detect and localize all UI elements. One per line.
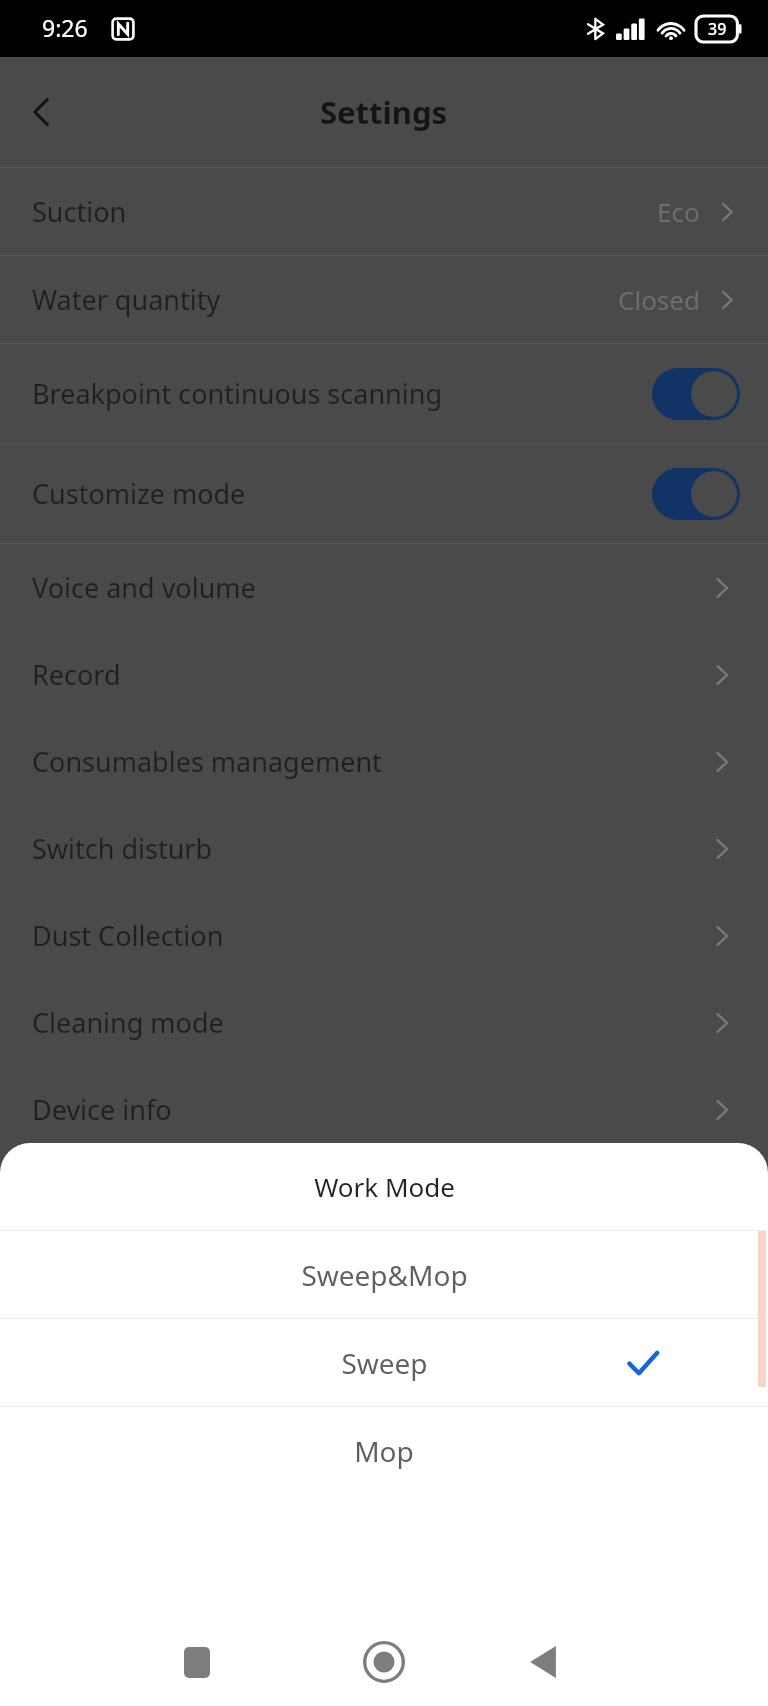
button[interactable]: Device info	[0, 1066, 768, 1153]
button[interactable]: Toggle Breakpoint continuous scanning	[652, 368, 740, 420]
staticText: Record	[32, 656, 708, 693]
staticText: Switch disturb	[32, 830, 708, 867]
button[interactable]: Switch disturb	[0, 805, 768, 892]
staticText: 39	[708, 18, 727, 40]
staticText: Device info	[32, 1091, 708, 1128]
staticText: Closed	[618, 282, 700, 317]
button[interactable]: Suction	[0, 168, 768, 255]
button[interactable]: Cleaning mode	[0, 979, 768, 1066]
staticText: Mop	[354, 1432, 414, 1470]
button[interactable]: Back	[504, 1623, 582, 1701]
staticText: Eco	[657, 194, 700, 229]
staticText: Water quantity	[32, 281, 221, 318]
staticText: Customize mode	[32, 475, 652, 512]
staticText: Suction	[32, 193, 127, 230]
button[interactable]: Sweep	[0, 1319, 768, 1406]
button[interactable]: Home	[345, 1623, 423, 1701]
button[interactable]: Record	[0, 631, 768, 718]
button[interactable]: Toggle Customize mode	[652, 468, 740, 520]
button[interactable]: Consumables management	[0, 718, 768, 805]
staticText: Breakpoint continuous scanning	[32, 375, 652, 412]
button[interactable]: Water quantity	[0, 256, 768, 343]
button[interactable]: Sweep&Mop	[0, 1231, 768, 1318]
staticText: 9:26	[42, 12, 88, 43]
button[interactable]: Back	[0, 70, 84, 154]
staticText: Settings	[320, 91, 448, 133]
staticText: Consumables management	[32, 743, 708, 780]
staticText: Sweep&Mop	[301, 1256, 468, 1294]
staticText: Cleaning mode	[32, 1004, 708, 1041]
button[interactable]: Customize mode	[0, 444, 768, 543]
button[interactable]: Recent apps	[158, 1623, 236, 1701]
staticText: Sweep	[341, 1344, 428, 1382]
staticText: Work Mode	[314, 1169, 455, 1204]
button[interactable]: Voice and volume	[0, 544, 768, 631]
staticText: Voice and volume	[32, 569, 708, 606]
button[interactable]: Breakpoint continuous scanning	[0, 344, 768, 443]
button[interactable]: Mop	[0, 1407, 768, 1494]
button[interactable]: Dust Collection	[0, 892, 768, 979]
staticText: Dust Collection	[32, 917, 708, 954]
